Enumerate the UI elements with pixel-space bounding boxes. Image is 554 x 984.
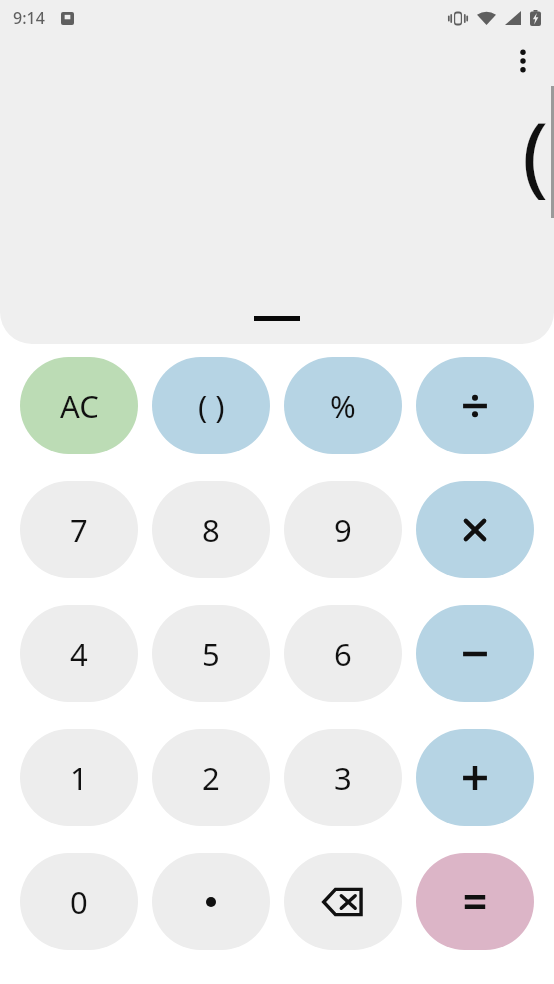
staticText: 0 [70,881,88,923]
button[interactable]: Divide [416,357,534,454]
button[interactable]: 8 [152,481,270,578]
button[interactable]: Multiply [416,481,534,578]
staticText: ( ) [198,385,225,427]
button[interactable]: 2 [152,729,270,826]
button[interactable]: Minus [416,605,534,702]
button[interactable]: 0 [20,853,138,950]
staticText: 4 [70,633,88,675]
staticText: 2 [202,757,220,799]
button[interactable]: Equals [416,853,534,950]
staticText: 5 [202,633,220,675]
staticText: ( [522,92,549,212]
button[interactable]: 7 [20,481,138,578]
button[interactable]: 9 [284,481,402,578]
staticText: AC [60,385,99,427]
button[interactable]: Parentheses [152,357,270,454]
button[interactable]: All clear [20,357,138,454]
button[interactable]: Percent [284,357,402,454]
button[interactable]: 1 [20,729,138,826]
staticText: 9:14 [13,7,45,29]
button[interactable]: 4 [20,605,138,702]
staticText: 6 [334,633,352,675]
staticText: 1 [70,757,88,799]
staticText: 8 [202,509,220,551]
button[interactable]: Plus [416,729,534,826]
button[interactable]: 6 [284,605,402,702]
button[interactable]: Backspace [284,853,402,950]
button[interactable]: More options [501,39,545,83]
button[interactable]: 5 [152,605,270,702]
staticText: 7 [70,509,88,551]
button[interactable]: 3 [284,729,402,826]
staticText: 9 [334,509,352,551]
button[interactable]: Decimal point [152,853,270,950]
staticText: % [330,385,356,427]
staticText: 3 [334,757,352,799]
